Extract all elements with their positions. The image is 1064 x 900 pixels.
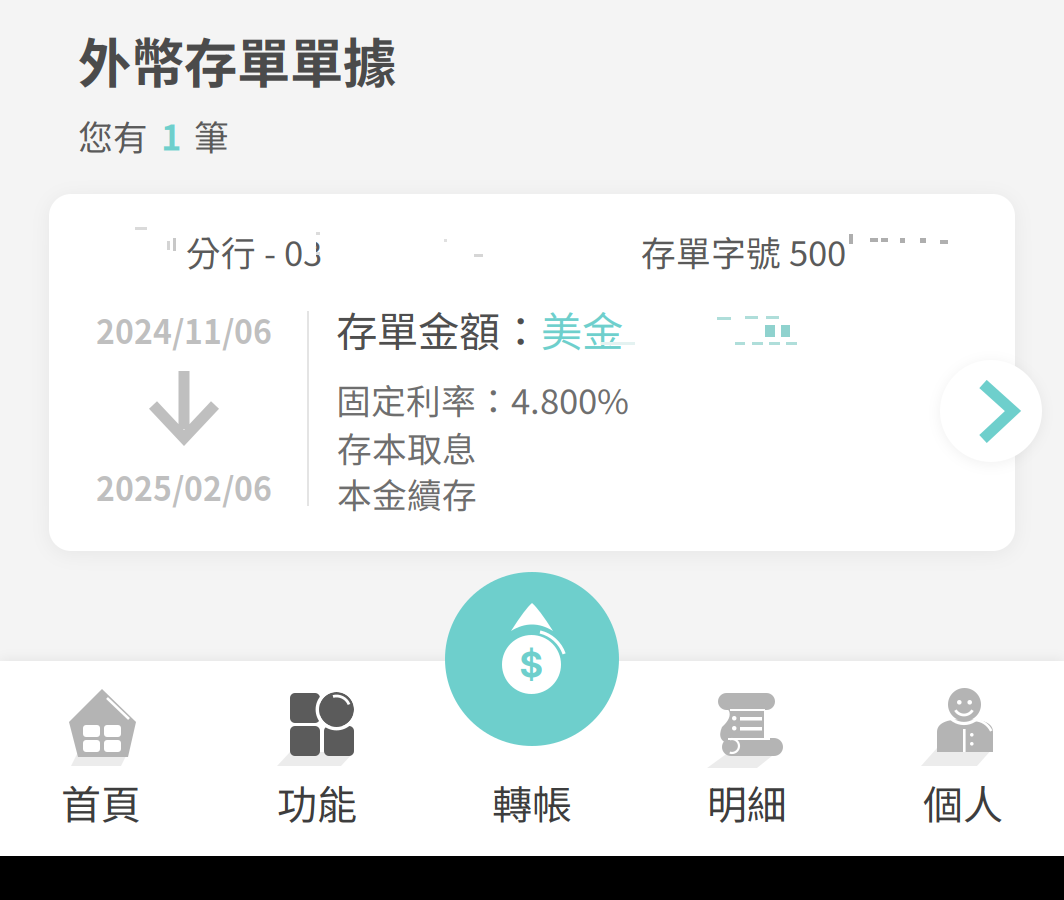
button[interactable]: 轉帳 [445, 572, 619, 746]
button[interactable]: 功能 [222, 661, 412, 841]
staticText: 分行 - 03 [186, 226, 322, 276]
button[interactable]: 個人 [868, 661, 1058, 841]
staticText: 固定利率：4.800% [336, 374, 629, 424]
staticText: 存本取息 [337, 422, 477, 472]
button[interactable]: 查看存單明細 [940, 360, 1042, 462]
button[interactable]: 明細 [652, 661, 842, 841]
staticText: 存單金額： [336, 299, 541, 359]
staticText: 轉帳 [492, 773, 572, 831]
staticText: 筆 [194, 110, 229, 160]
staticText: 您有 [78, 110, 148, 160]
staticText: 外幣存單單據 [78, 21, 396, 98]
staticText: 2025/02/06 [96, 464, 272, 510]
staticText: 明細 [707, 773, 787, 831]
staticText: 個人 [923, 773, 1003, 831]
staticText: $ [519, 643, 543, 686]
staticText: 1 [161, 110, 181, 160]
button[interactable]: 轉帳 [437, 661, 627, 841]
staticText: 美金 [541, 299, 623, 359]
staticText: 2024/11/06 [96, 307, 272, 353]
staticText: 功能 [277, 773, 357, 831]
staticText: 本金續存 [337, 468, 477, 518]
button[interactable]: 分行 - 03 [49, 194, 1015, 551]
staticText: 首頁 [61, 773, 141, 831]
button[interactable]: 首頁 [6, 661, 196, 841]
staticText: 存單字號 500 [641, 226, 846, 276]
